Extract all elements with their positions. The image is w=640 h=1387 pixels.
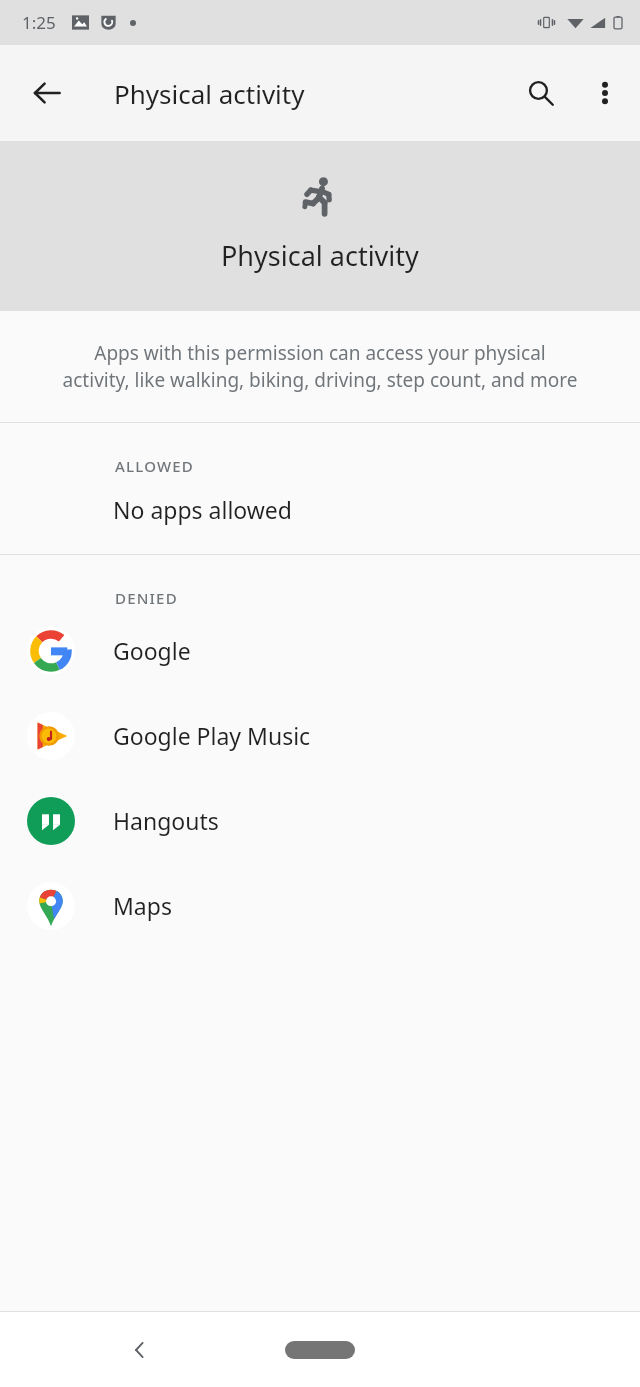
staticText: Google (113, 635, 191, 666)
button[interactable]: Google Play Music (0, 693, 640, 778)
staticText: Physical activity (114, 76, 305, 111)
button[interactable]: More options (574, 62, 636, 124)
button[interactable]: Back (110, 1320, 170, 1380)
button[interactable]: Back (11, 57, 83, 129)
button[interactable]: Hangouts (0, 778, 640, 863)
staticText: No apps allowed (113, 494, 292, 525)
staticText: Physical activity (221, 237, 419, 274)
button[interactable]: Home (281, 1330, 359, 1370)
button[interactable]: Search (508, 60, 574, 126)
staticText: ALLOWED (115, 456, 194, 476)
staticText: DENIED (115, 588, 178, 608)
button[interactable]: Maps (0, 863, 640, 948)
staticText: Maps (113, 890, 172, 921)
staticText: Google Play Music (113, 720, 311, 751)
button[interactable]: No apps allowed (0, 476, 640, 542)
staticText: Apps with this permission can access you… (60, 340, 580, 393)
staticText: 1:25 (22, 11, 56, 34)
staticText: Hangouts (113, 805, 219, 836)
button[interactable]: Google (0, 608, 640, 693)
